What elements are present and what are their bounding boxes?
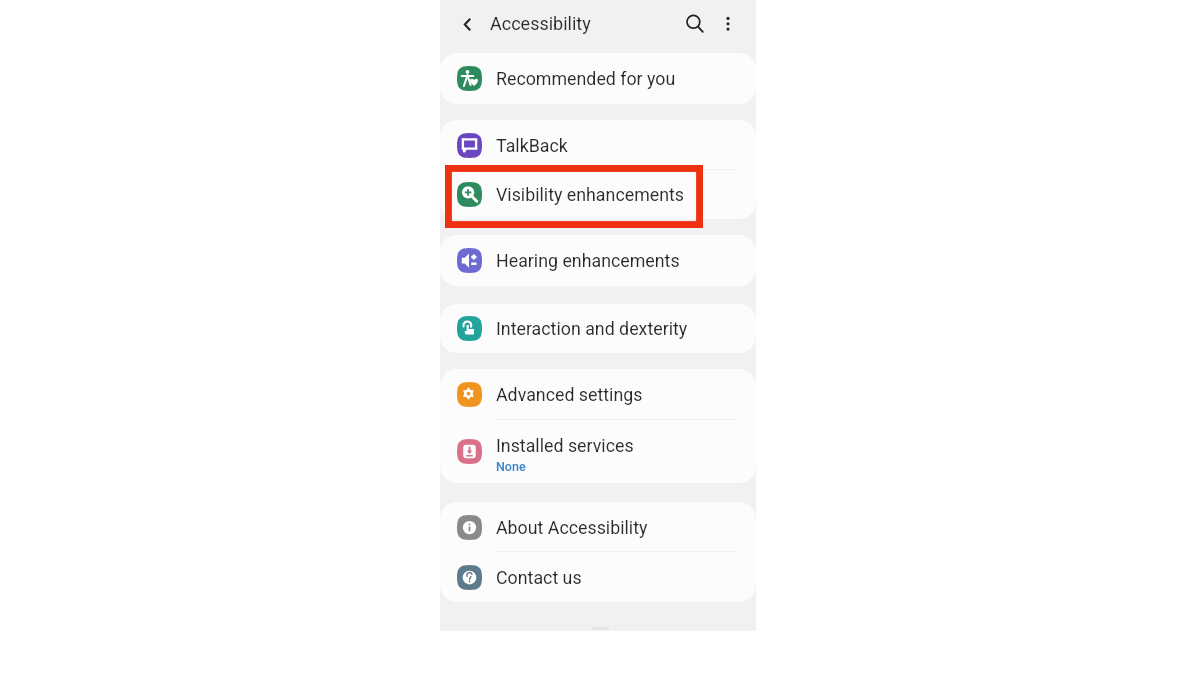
button[interactable]: Navigate up (452, 9, 482, 39)
staticText: Interaction and dexterity (496, 318, 688, 339)
staticText: Visibility enhancements (496, 184, 685, 205)
staticText: Contact us (496, 567, 582, 588)
button[interactable]: Search (677, 6, 713, 42)
staticText: Recommended for you (496, 68, 676, 89)
button[interactable]: Interaction and dexterity (440, 304, 756, 353)
button[interactable]: TalkBack (440, 120, 756, 170)
button[interactable]: More options (713, 9, 743, 39)
staticText: Hearing enhancements (496, 250, 680, 271)
button[interactable]: Visibility enhancements (440, 170, 756, 219)
staticText: TalkBack (496, 135, 568, 156)
staticText: Accessibility (490, 13, 591, 34)
staticText: About Accessibility (496, 517, 648, 538)
button[interactable]: Advanced settings (440, 369, 756, 420)
staticText: None (496, 459, 526, 474)
button[interactable]: Installed services (440, 420, 756, 483)
button[interactable]: About Accessibility (440, 502, 756, 552)
staticText: Installed services (496, 435, 634, 456)
button[interactable]: Recommended for you (440, 53, 756, 104)
button[interactable]: Contact us (440, 552, 756, 602)
button[interactable]: Hearing enhancements (440, 235, 756, 286)
staticText: Advanced settings (496, 384, 643, 405)
